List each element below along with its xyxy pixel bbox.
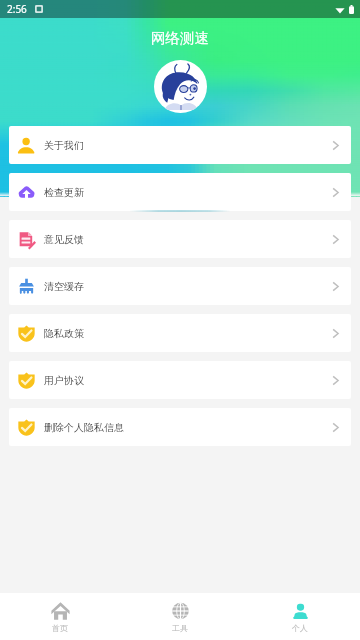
button[interactable]: 工具 [120,593,240,640]
staticText: 网络测速 [0,29,360,47]
staticText: 2:56 [7,2,27,16]
button[interactable]: 关于我们 [9,126,351,164]
button[interactable]: 清空缓存 [9,267,351,305]
button[interactable]: 意见反馈 [9,220,351,258]
staticText: 检查更新 [44,186,84,199]
staticText: 首页 [52,623,68,633]
staticText: 用户协议 [44,374,84,387]
button[interactable]: 检查更新 [9,173,351,211]
staticText: 隐私政策 [44,327,84,340]
button[interactable]: 隐私政策 [9,314,351,352]
staticText: 工具 [172,623,188,633]
staticText: 清空缓存 [44,280,84,293]
button[interactable]: User avatar [154,60,207,113]
button[interactable]: 个人 [240,593,360,640]
staticText: 个人 [292,623,308,633]
button[interactable]: 用户协议 [9,361,351,399]
staticText: 删除个人隐私信息 [44,421,124,434]
staticText: 意见反馈 [44,233,84,246]
button[interactable]: 首页 [0,593,120,640]
button[interactable]: 删除个人隐私信息 [9,408,351,446]
staticText: 关于我们 [44,139,84,152]
